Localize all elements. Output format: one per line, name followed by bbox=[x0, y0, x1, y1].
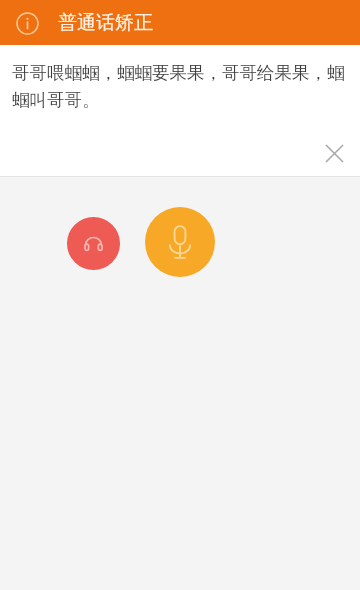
button[interactable]: Info bbox=[13, 9, 41, 37]
staticText: 普通话矫正 bbox=[58, 11, 153, 35]
button[interactable]: Play recording bbox=[67, 217, 120, 270]
button[interactable]: Record bbox=[145, 207, 215, 277]
button[interactable]: Close bbox=[314, 133, 354, 173]
staticText: 哥哥喂蝈蝈，蝈蝈要果果，哥哥给果果，蝈蝈叫哥哥。 bbox=[12, 62, 347, 111]
